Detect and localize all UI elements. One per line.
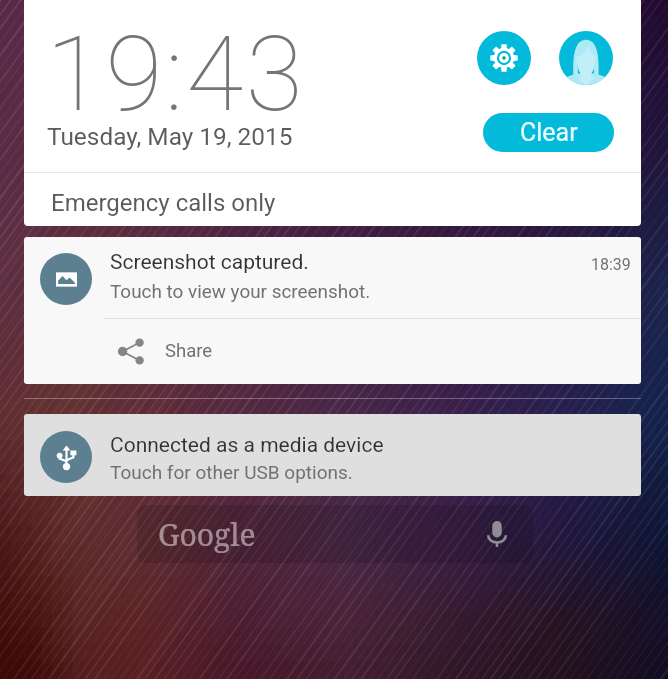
button[interactable]: Screenshot captured.: [24, 237, 641, 318]
button[interactable]: Connected as a media device: [24, 414, 641, 496]
staticText: 19:43: [46, 14, 306, 136]
button[interactable]: Google: [137, 505, 533, 563]
staticText: Touch to view your screenshot.: [110, 280, 371, 302]
staticText: Clear: [520, 118, 578, 147]
button[interactable]: Clear: [483, 113, 614, 152]
staticText: Touch for other USB options.: [110, 461, 353, 483]
staticText: Connected as a media device: [110, 433, 384, 458]
button[interactable]: Voice search: [480, 517, 514, 551]
button[interactable]: Emergency calls only: [51, 189, 276, 217]
staticText: Tuesday, May 19, 2015: [47, 122, 293, 151]
staticText: Google: [158, 514, 256, 555]
staticText: Screenshot captured.: [110, 250, 309, 275]
button[interactable]: Settings: [477, 31, 531, 85]
button[interactable]: User profile: [559, 31, 613, 85]
staticText: Share: [165, 340, 213, 362]
button[interactable]: Share: [24, 319, 641, 383]
staticText: 18:39: [591, 255, 631, 274]
